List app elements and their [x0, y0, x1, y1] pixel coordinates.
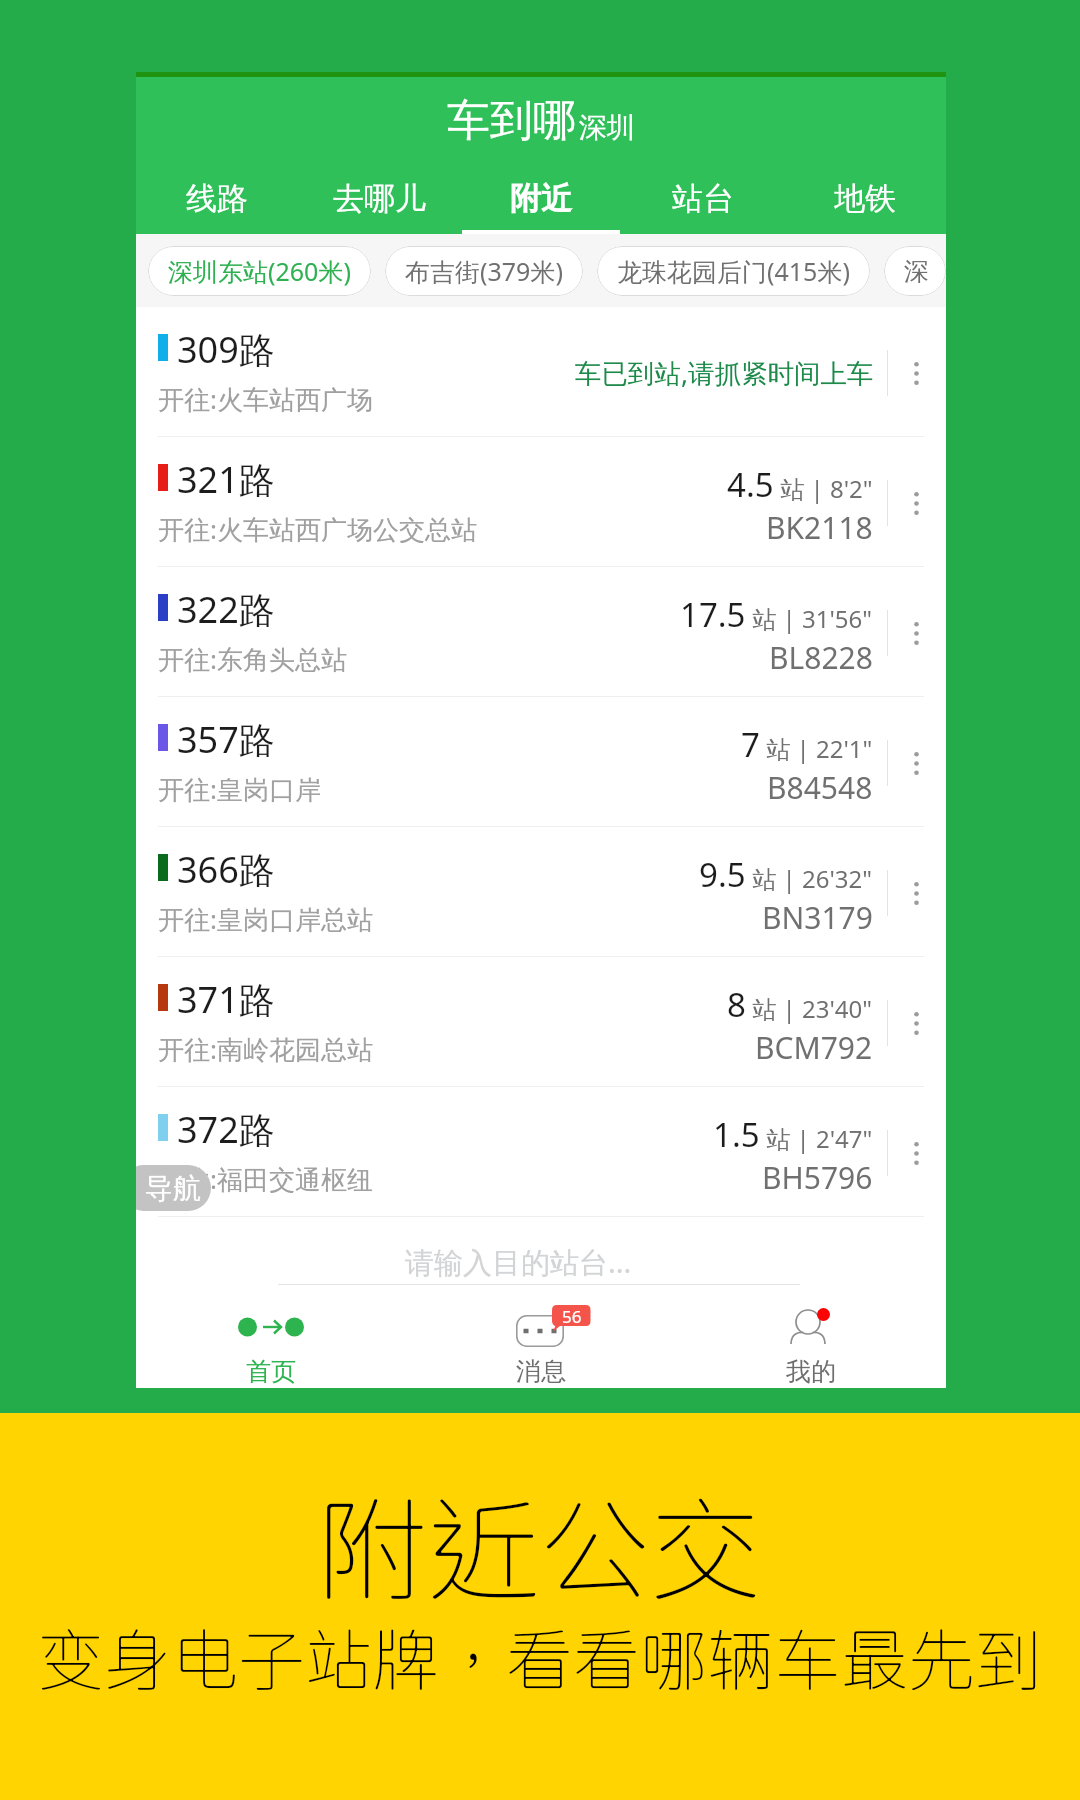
staticText: 龙珠花园后门(415米)	[617, 254, 850, 288]
button[interactable]: 龙珠花园后门(415米)	[597, 246, 870, 296]
button[interactable]: 我的	[676, 1291, 946, 1388]
staticText: 线路	[186, 179, 248, 218]
staticText: 开往:皇岗口岸总站	[158, 901, 373, 937]
button[interactable]: 357路	[136, 697, 946, 827]
button[interactable]: More options	[889, 438, 943, 568]
staticText: 4.5	[727, 462, 774, 507]
staticText: 站 | 26'32"	[746, 862, 873, 895]
staticText: 车到哪	[447, 94, 576, 148]
staticText: 站台	[672, 179, 734, 218]
button[interactable]: 321路	[136, 437, 946, 567]
staticText: 去哪儿	[333, 179, 426, 218]
staticText: 56	[562, 1305, 582, 1326]
staticText: 开往:皇岗口岸	[158, 771, 321, 807]
button[interactable]: 地铁	[784, 161, 946, 236]
button[interactable]: 371路	[136, 957, 946, 1087]
staticText: 371路	[177, 975, 275, 1024]
button[interactable]: More options	[889, 568, 943, 698]
staticText: 372路	[177, 1105, 275, 1154]
staticText: 8	[727, 982, 746, 1027]
button[interactable]: 导航	[136, 1165, 211, 1211]
button[interactable]: More options	[889, 308, 943, 438]
staticText: 导航	[145, 1171, 201, 1206]
button[interactable]: 附近	[460, 161, 622, 236]
staticText: 开往:南岭花园总站	[158, 1031, 373, 1067]
staticText: 开往:火车站西广场	[158, 381, 373, 417]
staticText: 首页	[246, 1356, 296, 1387]
staticText: 17.5	[680, 592, 746, 637]
staticText: 366路	[177, 845, 275, 894]
button[interactable]: More options	[889, 958, 943, 1088]
staticText: BCM792	[755, 1027, 873, 1068]
staticText: B84548	[767, 767, 873, 808]
staticText: 附近公交	[317, 1483, 762, 1614]
staticText: BH5796	[762, 1157, 873, 1198]
button[interactable]: 深圳北站(870米)	[884, 246, 946, 296]
button[interactable]: 322路	[136, 567, 946, 697]
staticText: 1.5	[713, 1112, 760, 1157]
staticText: 站 | 8'2"	[774, 472, 873, 505]
staticText: 深圳东站(260米)	[168, 254, 351, 288]
staticText: 开往:火车站西广场公交总站	[158, 511, 477, 547]
button[interactable]: 线路	[136, 161, 298, 236]
staticText: 附近	[510, 179, 572, 218]
button[interactable]: 布吉街(379米)	[385, 246, 583, 296]
staticText: 7	[741, 722, 760, 767]
staticText: 我的	[786, 1356, 836, 1387]
staticText: 请输入目的站台...	[405, 1242, 632, 1282]
staticText: 站 | 2'47"	[760, 1122, 873, 1155]
staticText: BL8228	[769, 637, 873, 678]
button[interactable]: 309路	[136, 307, 946, 437]
button[interactable]: 首页	[136, 1291, 406, 1388]
button[interactable]: 站台	[622, 161, 784, 236]
staticText: 9.5	[699, 852, 746, 897]
staticText: BK2118	[766, 507, 873, 548]
staticText: 站 | 22'1"	[760, 732, 873, 765]
staticText: 变身电子站牌，看看哪辆车最先到	[37, 1620, 1042, 1699]
staticText: 322路	[177, 585, 275, 634]
button[interactable]: More options	[889, 1088, 943, 1218]
button[interactable]: 366路	[136, 827, 946, 957]
staticText: 车已到站,请抓紧时间上车	[575, 355, 874, 391]
staticText: 深圳	[579, 110, 635, 145]
staticText: 地铁	[834, 179, 896, 218]
staticText: 开往:东角头总站	[158, 641, 347, 677]
staticText: 321路	[177, 455, 275, 504]
staticText: 站 | 23'40"	[746, 992, 873, 1025]
button[interactable]: 请输入目的站台...	[405, 1242, 705, 1288]
button[interactable]: More options	[889, 698, 943, 828]
staticText: 站 | 31'56"	[746, 602, 873, 635]
staticText: 深圳北站(870米)	[904, 256, 926, 287]
button[interactable]: 深圳东站(260米)	[148, 246, 371, 296]
staticText: BN3179	[762, 897, 873, 938]
staticText: 布吉街(379米)	[405, 254, 563, 288]
staticText: 消息	[516, 1356, 566, 1387]
staticText: 309路	[177, 325, 275, 374]
button[interactable]: 去哪儿	[298, 161, 460, 236]
staticText: 开往:福田交通枢纽	[158, 1161, 373, 1197]
staticText: 357路	[177, 715, 275, 764]
button[interactable]: 56	[406, 1291, 676, 1388]
button[interactable]: 372路	[136, 1087, 946, 1217]
button[interactable]: More options	[889, 828, 943, 958]
